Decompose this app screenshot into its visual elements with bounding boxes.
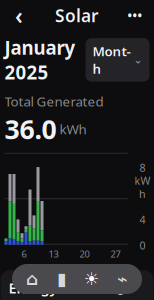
staticText: 0: [139, 238, 145, 252]
staticText: •••: [127, 7, 142, 23]
staticText: 27: [110, 248, 120, 260]
staticText: Month: [92, 42, 130, 77]
staticText: 36.0: [4, 111, 56, 147]
button[interactable]: Toggle visibility: [111, 279, 129, 297]
staticText: ⌁: [117, 269, 127, 289]
button[interactable]: Battery: [52, 269, 72, 289]
staticText: 8: [139, 160, 145, 175]
staticText: ⌂: [26, 269, 38, 289]
button[interactable]: Back: [6, 4, 32, 26]
staticText: h: [139, 187, 146, 201]
staticText: ☀: [84, 269, 100, 289]
staticText: 6: [21, 248, 26, 260]
button[interactable]: Grid: [112, 269, 132, 289]
staticText: Total Generated: [4, 93, 103, 110]
button[interactable]: Solar: [82, 269, 102, 289]
staticText: 20: [79, 248, 89, 260]
button[interactable]: More options: [122, 4, 148, 26]
staticText: ⌃: [132, 281, 142, 295]
staticText: kWh: [59, 120, 86, 138]
button[interactable]: Month: [85, 38, 149, 81]
staticText: Energy Flow: [8, 278, 94, 298]
staticText: ‹: [15, 0, 23, 31]
staticText: January 2025: [4, 35, 75, 85]
staticText: kW: [134, 174, 150, 188]
button[interactable]: Home: [22, 269, 42, 289]
staticText: ⌄: [133, 54, 142, 66]
staticText: 13: [48, 248, 58, 260]
staticText: 4: [139, 212, 145, 227]
staticText: ▮: [57, 269, 67, 289]
button[interactable]: Collapse section: [129, 279, 145, 297]
staticText: ◉: [114, 279, 127, 296]
staticText: Solar: [55, 4, 99, 27]
